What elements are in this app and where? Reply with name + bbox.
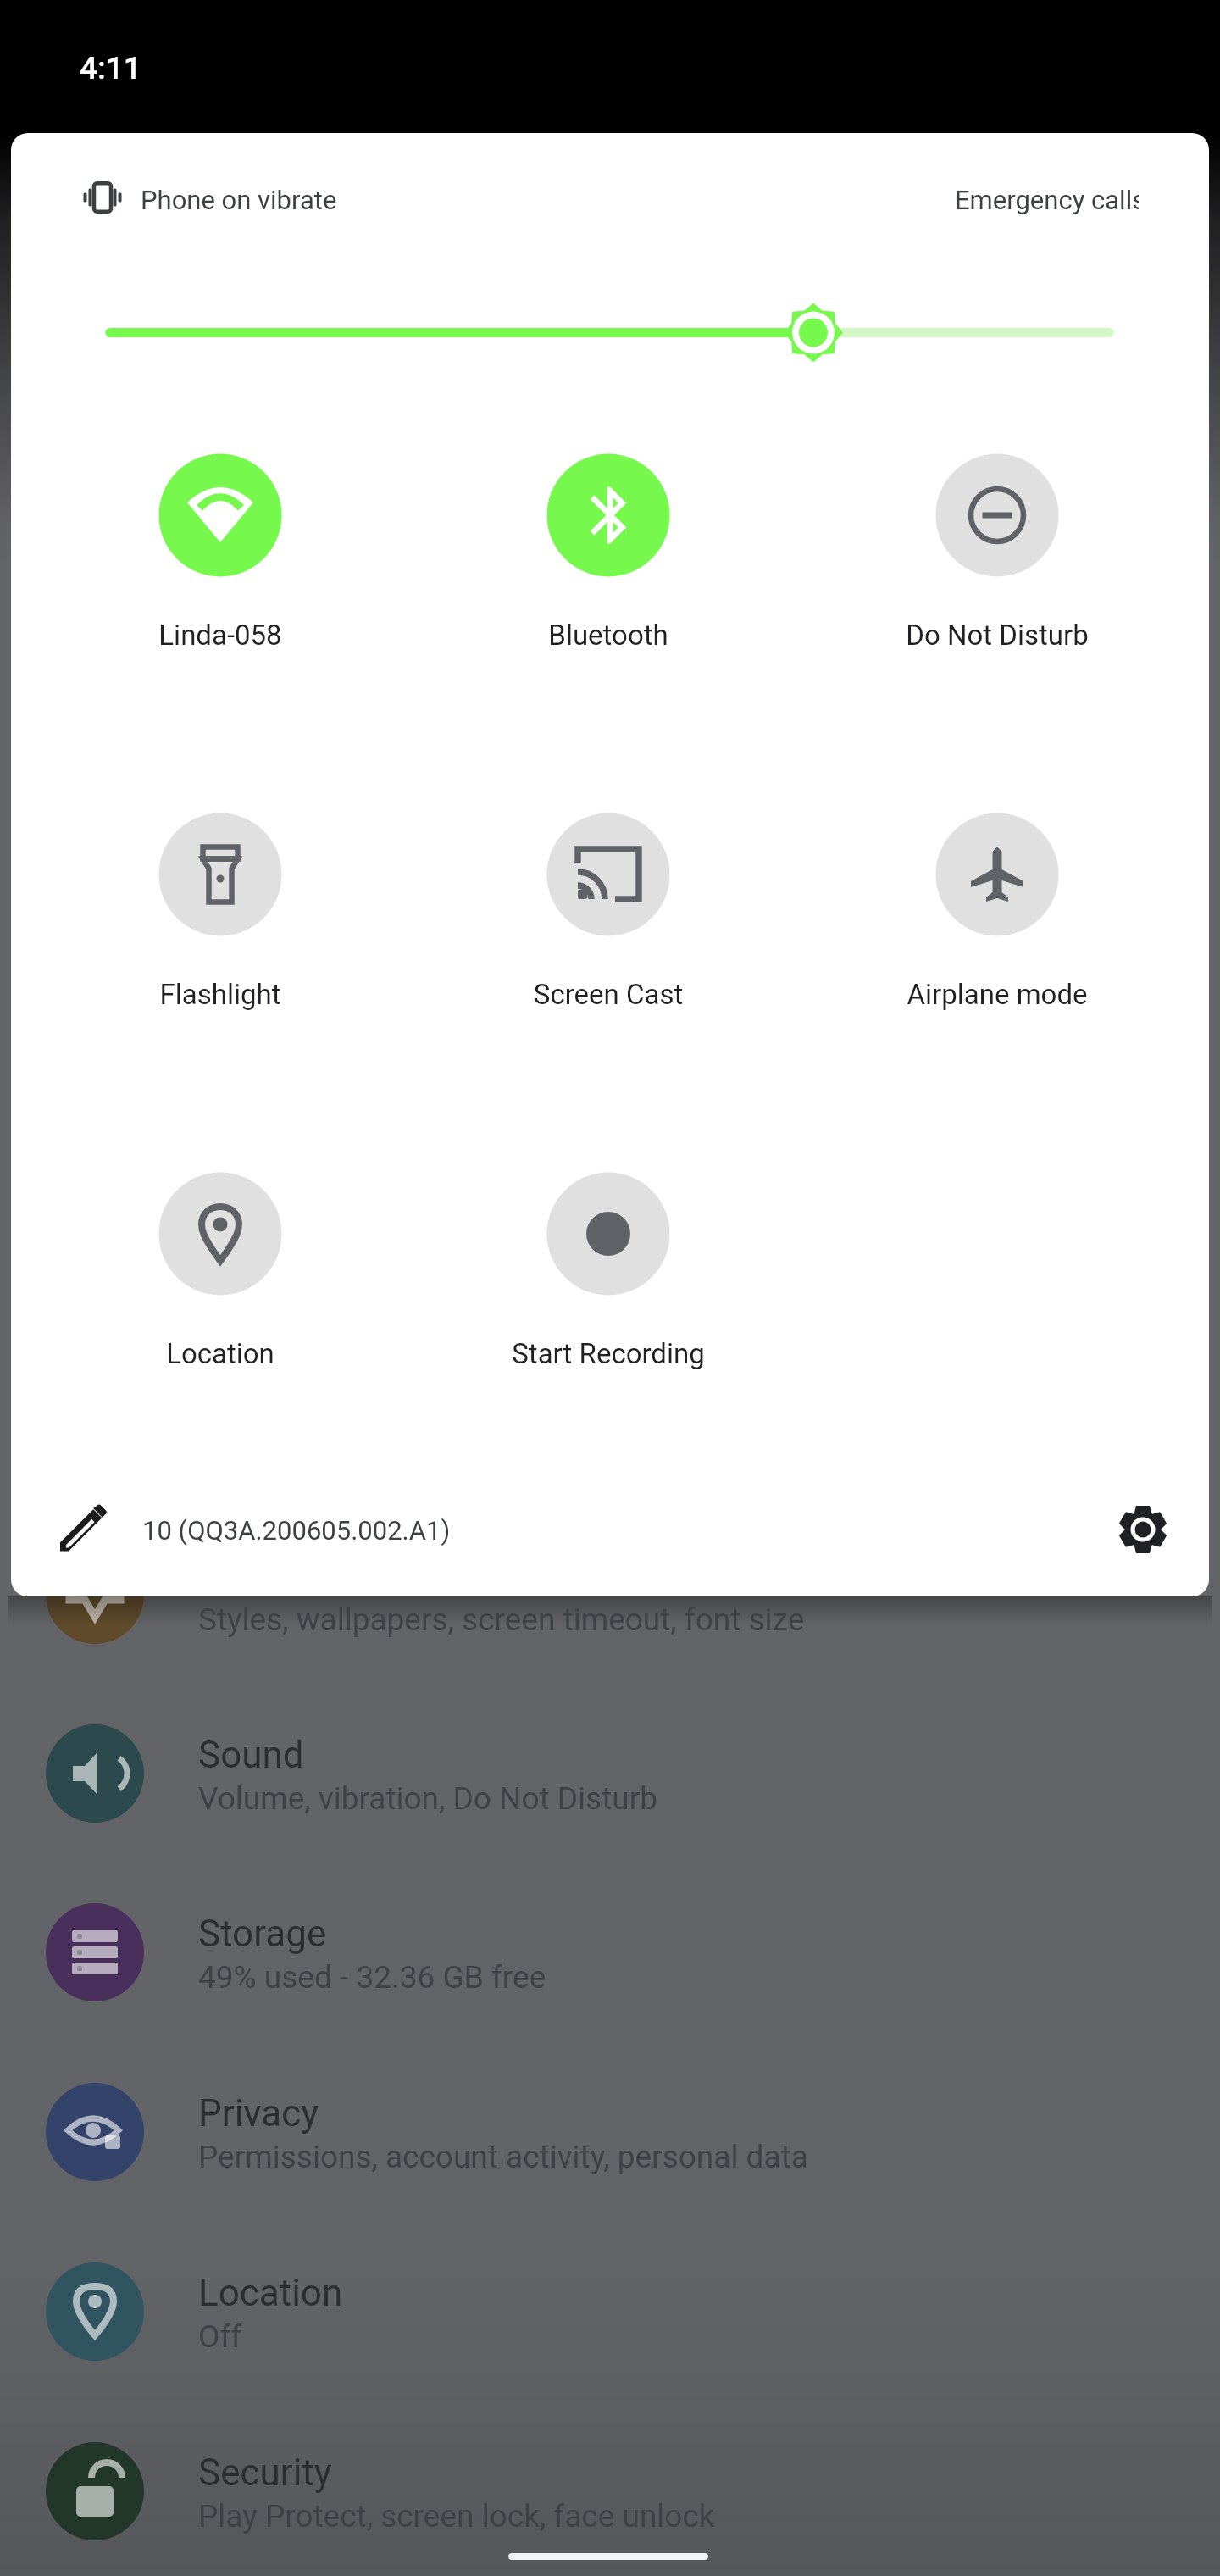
button[interactable]: Airplane mode [803,790,1191,1019]
button[interactable]: Settings [1105,1491,1181,1568]
button[interactable]: Sound [0,1685,1220,1863]
staticText: 10 (QQ3A.200605.002.A1) [142,1515,451,1546]
button[interactable]: Location [26,1149,414,1378]
button[interactable]: Location [0,2223,1220,2401]
staticText: 4:11 [80,50,141,86]
button[interactable]: Flashlight [26,790,414,1019]
button[interactable]: Linda-058 [26,430,414,659]
staticText: Do Not Disturb [811,619,1184,658]
staticText: Bluetooth [422,619,795,658]
button[interactable]: Bluetooth [414,430,802,659]
staticText: Permissions, account activity, personal … [198,2139,808,2175]
staticText: Off [198,2318,242,2355]
staticText: Location [34,1337,407,1376]
button[interactable]: Display [0,1506,1220,1685]
staticText: Volume, vibration, Do Not Disturb [198,1780,658,1817]
staticText: Sound [198,1733,304,1777]
staticText: Privacy [198,2091,319,2135]
staticText: Phone on vibrate [141,185,337,215]
button[interactable]: Storage [0,1863,1220,2042]
button[interactable]: Start Recording [414,1149,802,1378]
staticText: Airplane mode [811,978,1184,1017]
staticText: Storage [198,1912,327,1956]
staticText: 49% used - 32.36 GB free [198,1959,546,1996]
staticText: Display [198,1554,319,1598]
button[interactable]: Security [0,2402,1220,2576]
staticText: Start Recording [422,1337,795,1376]
staticText: Flashlight [34,978,407,1017]
button[interactable]: Edit tiles [44,1491,120,1568]
button[interactable]: Privacy [0,2043,1220,2222]
staticText: Emergency calls [955,185,1139,215]
staticText: Styles, wallpapers, screen timeout, font… [198,1602,805,1638]
staticText: Screen Cast [422,978,795,1017]
staticText: Linda-058 [34,619,407,658]
button[interactable]: Phone on vibrate [68,168,356,230]
button[interactable]: Brightness [93,297,1127,369]
button[interactable]: 10 (QQ3A.200605.002.A1) [142,1515,451,1546]
staticText: Security [198,2451,332,2495]
staticText: Location [198,2271,343,2315]
button[interactable]: Screen Cast [414,790,802,1019]
staticText: Play Protect, screen lock, face unlock [198,2498,715,2534]
button[interactable]: Do Not Disturb [803,430,1191,659]
button[interactable]: Emergency calls [955,168,1139,230]
